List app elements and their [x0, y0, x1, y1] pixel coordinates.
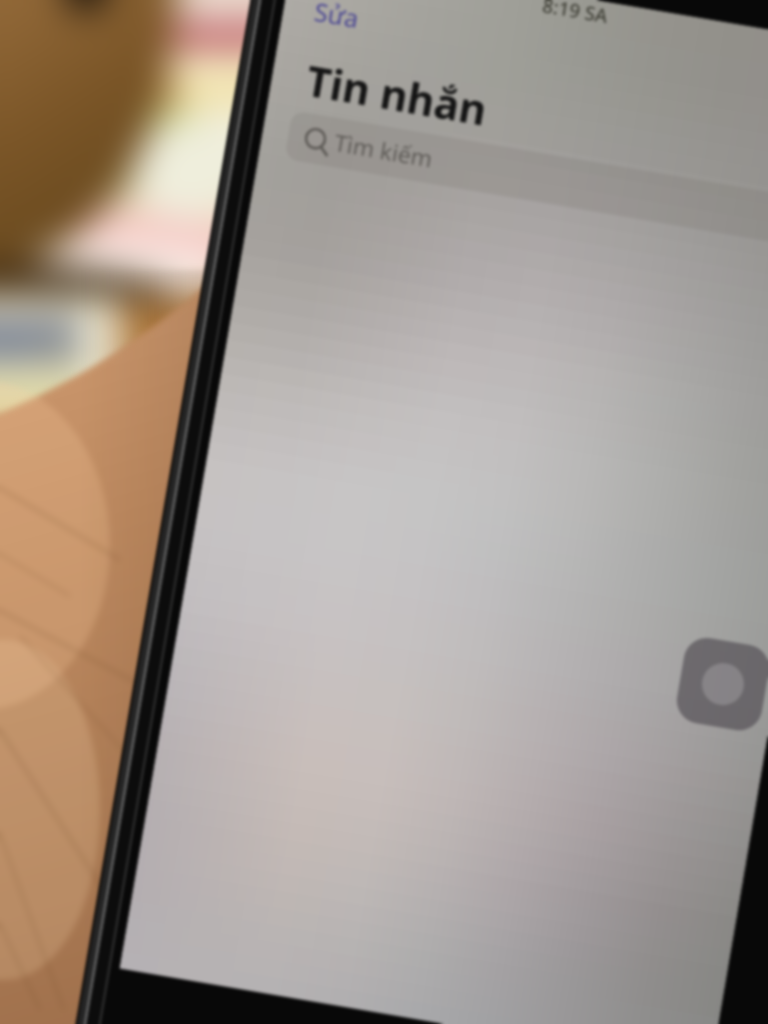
- button[interactable]: Tin nhắn conversation list: [0, 0, 768, 1024]
